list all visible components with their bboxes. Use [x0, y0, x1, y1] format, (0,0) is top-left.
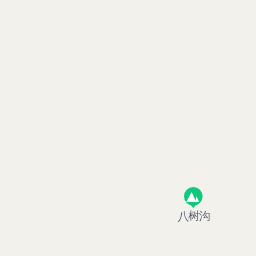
staticText: 八树沟 — [177, 209, 210, 224]
button[interactable]: 八树沟 mountain marker — [176, 186, 212, 222]
